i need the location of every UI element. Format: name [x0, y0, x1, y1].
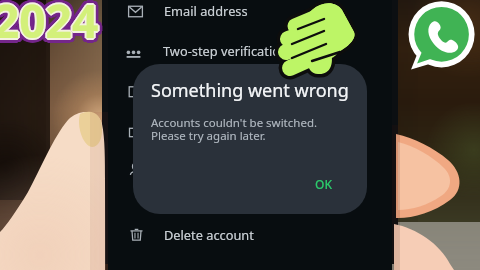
staticText: 2024: [0, 0, 102, 49]
staticText: 2024: [0, 0, 99, 49]
staticText: 2024: [0, 0, 98, 50]
staticText: 2024: [0, 0, 95, 53]
staticText: 2024: [0, 0, 95, 55]
staticText: 2024: [0, 0, 100, 48]
staticText: 2024: [0, 0, 95, 49]
staticText: Something went wrong: [151, 78, 349, 103]
staticText: 2024: [0, 0, 98, 48]
staticText: 2024: [0, 0, 103, 51]
staticText: 2024: [0, 0, 100, 55]
staticText: 2024: [0, 0, 103, 49]
staticText: 2024: [0, 0, 96, 56]
staticText: OK: [315, 176, 332, 192]
staticText: 2024: [0, 0, 101, 51]
staticText: 2024: [0, 0, 100, 53]
staticText: 2024: [0, 0, 96, 53]
staticText: Email address: [164, 2, 248, 19]
staticText: 2024: [0, 0, 101, 54]
button[interactable]: Two-step verification: [108, 39, 392, 63]
staticText: 2024: [0, 0, 99, 52]
staticText: 2024: [0, 0, 99, 57]
staticText: 2024: [0, 0, 100, 49]
staticText: Two-step verification: [163, 42, 288, 59]
staticText: 2024: [0, 0, 101, 55]
staticText: 2024: [0, 0, 98, 53]
button[interactable]: WhatsApp: [405, 1, 476, 72]
button[interactable]: Delete account: [108, 223, 392, 247]
button[interactable]: [108, 158, 392, 182]
staticText: 2024: [0, 0, 97, 55]
staticText: 2024: [0, 0, 97, 54]
staticText: 2024: [0, 0, 98, 56]
staticText: 2024: [0, 0, 98, 54]
staticText: Delete account: [164, 226, 254, 243]
staticText: 2024: [0, 0, 99, 48]
staticText: Accounts couldn't be switched.: [151, 115, 318, 131]
staticText: 2024: [0, 0, 95, 52]
staticText: 2024: [0, 0, 96, 49]
staticText: 2024: [0, 0, 97, 50]
staticText: 2024: [0, 0, 95, 50]
staticText: 2024: [0, 0, 99, 47]
staticText: 2024: [0, 0, 103, 55]
staticText: 2024: [0, 0, 99, 54]
staticText: 2024: [0, 0, 102, 54]
staticText: 2024: [0, 0, 102, 51]
staticText: 2024: [0, 0, 97, 49]
staticText: 2024: [0, 0, 96, 48]
staticText: 2024: [0, 0, 100, 50]
staticText: 2024: [0, 0, 96, 54]
staticText: 2024: [0, 0, 98, 55]
staticText: 2024: [0, 0, 97, 52]
staticText: 2024: [0, 0, 102, 50]
staticText: 2024: [0, 0, 95, 54]
staticText: 2024: [0, 0, 100, 52]
staticText: 2024: [0, 0, 103, 52]
staticText: 2024: [0, 0, 101, 52]
staticText: 2024: [0, 0, 101, 56]
staticText: 2024: [0, 0, 99, 54]
staticText: 2024: [0, 0, 102, 52]
staticText: 2024: [0, 0, 99, 51]
staticText: 2024: [0, 0, 97, 53]
staticText: 2024: [0, 0, 96, 52]
staticText: 2024: [0, 0, 104, 52]
staticText: 2024: [0, 0, 103, 54]
staticText: 2024: [0, 0, 98, 52]
staticText: 2024: [0, 0, 103, 50]
staticText: 2024: [0, 0, 100, 56]
staticText: 2024: [0, 0, 96, 50]
button[interactable]: Email address: [108, 0, 392, 23]
staticText: 2024: [0, 0, 99, 53]
staticText: 2024: [0, 0, 98, 51]
staticText: Please try again later.: [151, 128, 266, 144]
staticText: 2024: [0, 0, 98, 49]
staticText: 2024: [0, 0, 101, 49]
button[interactable]: [108, 81, 392, 105]
button[interactable]: [108, 121, 392, 145]
staticText: 2024: [0, 0, 102, 48]
staticText: 2024: [0, 0, 101, 50]
staticText: 2024: [0, 0, 97, 52]
staticText: 2024: [0, 0, 101, 53]
staticText: 2024: [0, 0, 99, 50]
staticText: 2024: [0, 0, 101, 52]
staticText: 2024: [0, 0, 96, 55]
staticText: 2024: [0, 0, 101, 48]
staticText: 2024: [0, 0, 100, 51]
staticText: 2024: [0, 0, 99, 55]
button[interactable]: OK: [305, 168, 351, 196]
staticText: 2024: [0, 0, 103, 53]
staticText: 2024: [0, 0, 100, 54]
staticText: 2024: [0, 0, 99, 56]
staticText: 2024: [0, 0, 99, 50]
staticText: 2024: [0, 0, 95, 51]
staticText: 2024: [0, 0, 102, 56]
staticText: 2024: [0, 0, 102, 53]
staticText: 2024: [0, 0, 97, 48]
staticText: 2024: [0, 0, 96, 51]
staticText: 2024: [0, 0, 97, 51]
staticText: 2024: [0, 0, 94, 52]
staticText: 2024: [0, 0, 102, 55]
staticText: 2024: [0, 0, 97, 56]
